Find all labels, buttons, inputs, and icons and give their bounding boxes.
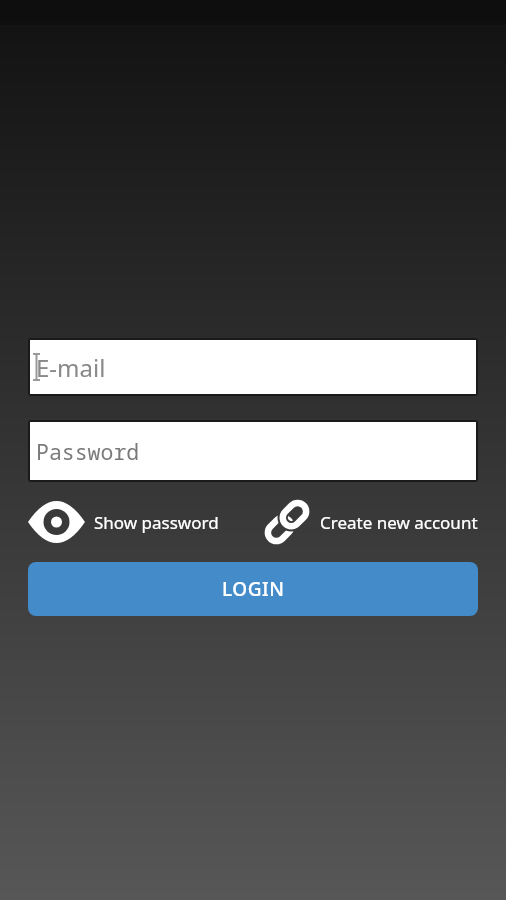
staticText: E-mail xyxy=(36,351,106,384)
staticText: Create new account xyxy=(320,511,478,534)
button[interactable]: Create new account xyxy=(263,498,478,546)
staticText: Password xyxy=(36,437,140,466)
button[interactable]: E-mail xyxy=(30,340,476,394)
button[interactable]: LOGIN xyxy=(28,562,478,616)
button[interactable]: Show password xyxy=(28,501,219,543)
staticText: Show password xyxy=(94,511,219,534)
staticText: LOGIN xyxy=(222,576,285,602)
button[interactable]: Password xyxy=(30,422,476,480)
